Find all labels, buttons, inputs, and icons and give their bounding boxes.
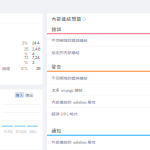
staticText: 指定的內部連結: [51, 50, 79, 55]
staticText: 內部連結的 nofollow 屬性: [51, 99, 95, 105]
button[interactable]: 內部連結的 nofollow 屬性: [47, 96, 150, 107]
staticText: 內部連結問題: [51, 16, 81, 22]
staticText: 244: [32, 41, 40, 45]
staticText: 傳入: [15, 92, 23, 98]
staticText: 外部連結的 nofollow 屬性: [51, 139, 95, 145]
staticText: 損壞: [2, 66, 10, 71]
staticText: 29: [36, 66, 40, 71]
staticText: 72%: [24, 55, 28, 65]
button[interactable]: 傳入: [15, 92, 24, 98]
button[interactable]: 外部連結的 nofollow 屬性: [47, 136, 150, 148]
button[interactable]: 錯誤 URL 格式: [47, 108, 150, 119]
staticText: 通知: [51, 128, 61, 134]
staticText: 警告: [51, 64, 61, 70]
staticText: 不同網域的錯誤連結: [51, 37, 87, 43]
staticText: 151-500: [15, 130, 26, 134]
staticText: 錯誤 URL 格式: [51, 111, 77, 117]
staticText: 25%: [24, 47, 28, 56]
staticText: 錯誤: [51, 26, 61, 33]
staticText: 不同網域的錯誤連結: [51, 75, 87, 81]
staticText: 0%: [21, 66, 28, 71]
staticText: 傳出: [25, 92, 33, 98]
staticText: 51-150: [4, 130, 13, 134]
button[interactable]: 傳出: [25, 92, 33, 98]
button[interactable]: 不同網域的錯誤連結: [47, 34, 150, 46]
staticText: 太多 on-page 連結: [51, 87, 82, 93]
button[interactable]: 指定的內部連結: [47, 47, 150, 58]
staticText: 500+: [29, 130, 37, 134]
button[interactable]: 太多 on-page 連結: [47, 84, 150, 96]
button[interactable]: 不同網域的錯誤連結: [47, 72, 150, 84]
staticText: 2,484: [32, 47, 40, 56]
staticText: 2%: [22, 41, 28, 45]
staticText: 7,243: [32, 55, 40, 65]
